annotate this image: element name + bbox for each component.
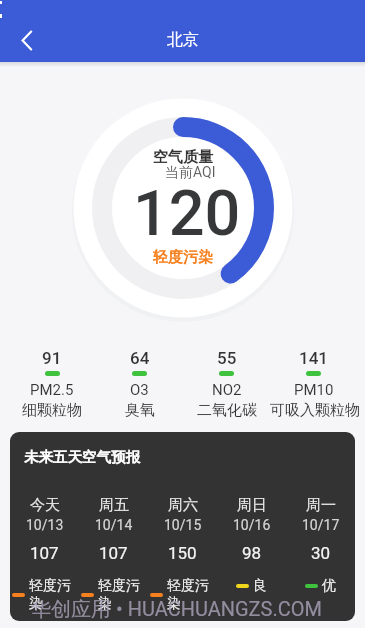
staticText: 10/13 [26, 517, 64, 533]
staticText: PM10 [294, 381, 334, 397]
staticText: 当前AQI [165, 164, 216, 182]
staticText: 染 [98, 595, 112, 613]
staticText: 10/15 [164, 517, 202, 533]
staticText: 轻度污 [98, 577, 140, 595]
staticText: 98 [242, 543, 262, 563]
staticText: 二氧化碳 [197, 401, 257, 417]
staticText: 未来五天空气预报 [24, 448, 140, 466]
staticText: 10/16 [233, 517, 271, 533]
staticText: NO2 [212, 381, 242, 397]
staticText: 良 [253, 577, 267, 595]
staticText: 染 [167, 595, 181, 613]
staticText: 120 [133, 177, 241, 233]
staticText: 北京 [167, 30, 199, 50]
staticText: 10/17 [302, 517, 340, 533]
staticText: 轻度污 [29, 577, 71, 595]
staticText: 107 [99, 543, 128, 563]
staticText: 今天 [30, 496, 60, 514]
button[interactable] [13, 26, 41, 54]
staticText: 周一 [306, 496, 336, 514]
staticText: 优 [322, 577, 336, 595]
staticText: 周日 [237, 496, 267, 514]
staticText: 55 [217, 348, 237, 368]
staticText: PM2.5 [30, 381, 74, 397]
staticText: 64 [130, 348, 150, 368]
staticText: 150 [168, 543, 197, 563]
staticText: 30 [311, 543, 331, 563]
staticText: 轻度污 [167, 577, 209, 595]
staticText: 染 [29, 595, 43, 613]
staticText: 10/14 [95, 517, 133, 533]
staticText: O3 [130, 381, 149, 397]
staticText: 107 [30, 543, 59, 563]
staticText: 141 [299, 348, 328, 368]
staticText: 细颗粒物 [22, 401, 82, 417]
staticText: 轻度污染 [153, 248, 213, 267]
staticText: 91 [42, 348, 62, 368]
staticText: 周五 [99, 496, 129, 514]
staticText: 臭氧 [125, 401, 155, 417]
staticText: 华创应用 • HUACHUANGZS.COM [31, 597, 322, 622]
staticText: 可吸入颗粒物 [270, 401, 357, 417]
staticText: 空气质量 [153, 148, 213, 167]
staticText: 周六 [168, 496, 198, 514]
